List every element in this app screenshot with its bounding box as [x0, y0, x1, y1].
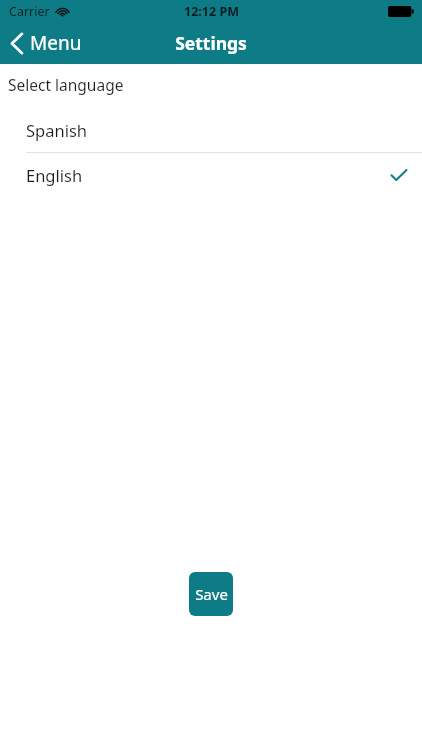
- button[interactable]: Spanish: [0, 108, 422, 152]
- staticText: Spanish: [26, 119, 88, 141]
- button[interactable]: English: [0, 153, 422, 197]
- staticText: Carrier: [9, 3, 50, 20]
- other: Selected: [391, 169, 407, 181]
- staticText: Menu: [30, 30, 82, 56]
- staticText: Select language: [8, 74, 124, 95]
- button[interactable]: Save: [189, 572, 233, 616]
- button[interactable]: Back: [0, 26, 94, 60]
- staticText: 12:12 PM: [184, 3, 239, 20]
- staticText: English: [26, 164, 83, 186]
- staticText: Save: [195, 584, 228, 604]
- other: Back: [11, 33, 23, 54]
- staticText: Settings: [175, 31, 247, 55]
